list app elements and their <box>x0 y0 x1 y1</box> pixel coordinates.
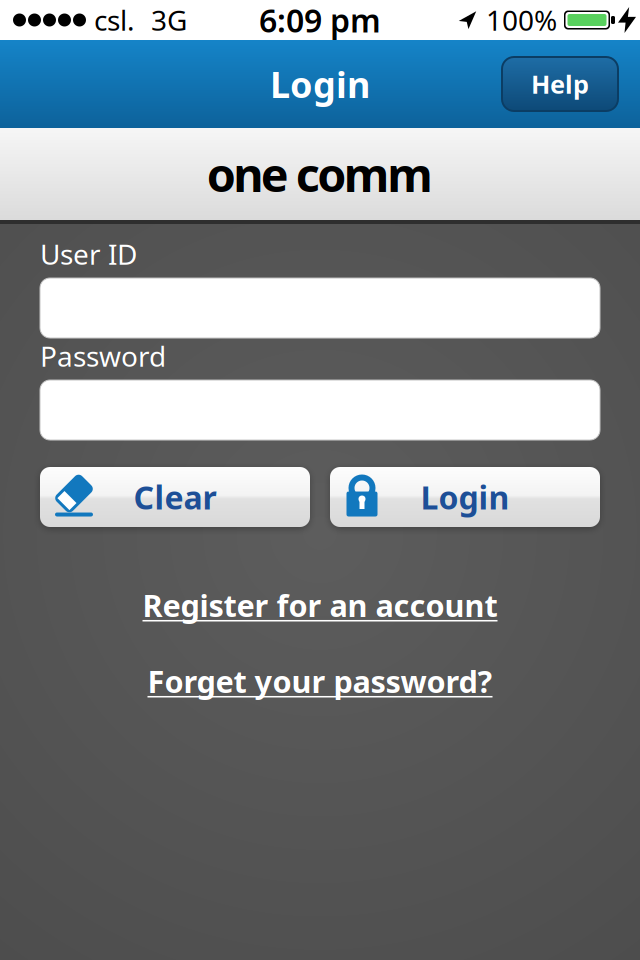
staticText: Help <box>531 67 589 101</box>
button[interactable]: Clear <box>40 467 310 527</box>
staticText: User ID <box>40 235 137 273</box>
staticText: Password <box>40 337 166 375</box>
button[interactable]: Forget your password? <box>147 661 492 701</box>
staticText: Forget your password? <box>147 661 492 701</box>
staticText: 3G <box>151 1 187 39</box>
staticText: Login <box>270 60 370 108</box>
staticText: 6:09 pm <box>259 0 381 41</box>
button[interactable]: Register for an account <box>142 585 497 625</box>
staticText: csl. <box>94 1 135 39</box>
staticText: 100% <box>486 1 557 39</box>
staticText: one comm <box>207 143 433 205</box>
button[interactable]: Help <box>502 57 618 111</box>
button[interactable]: Login <box>330 467 600 527</box>
staticText: Register for an account <box>142 585 497 625</box>
staticText: Login <box>420 476 509 518</box>
staticText: Clear <box>133 476 216 518</box>
